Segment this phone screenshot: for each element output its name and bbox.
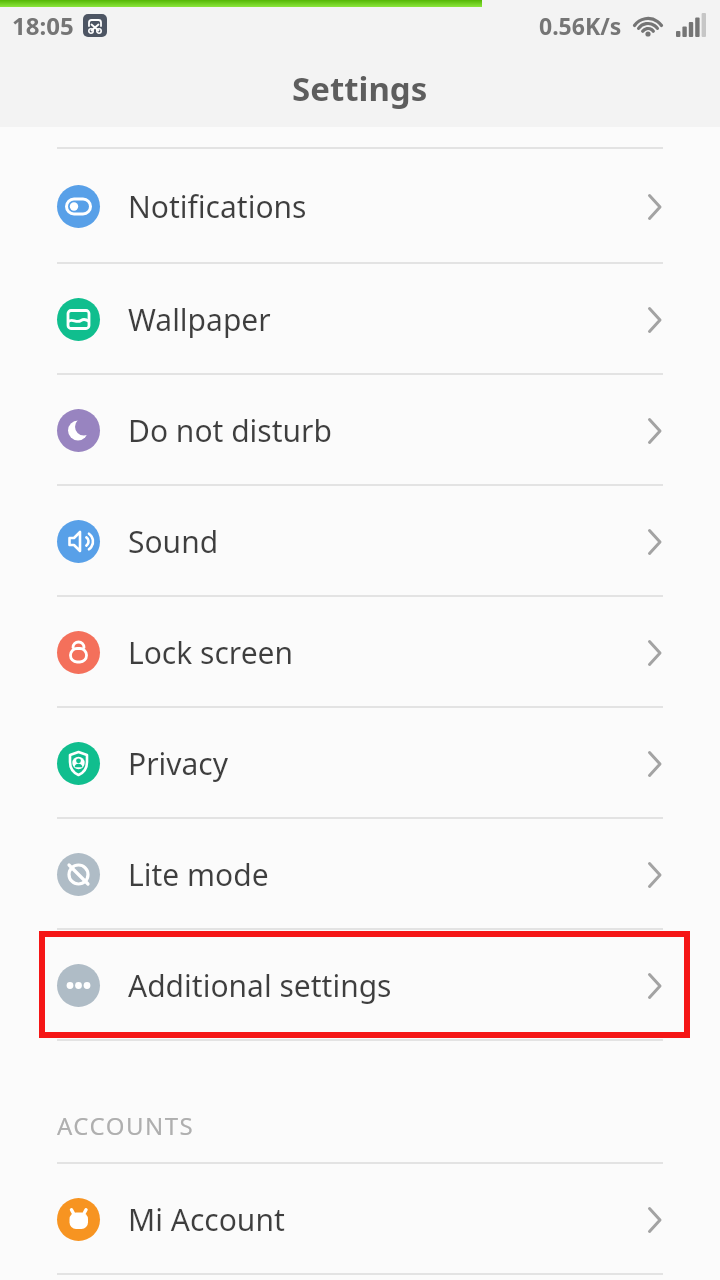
button[interactable]: Notifications xyxy=(0,149,720,264)
staticText: Settings xyxy=(292,66,428,111)
staticText: Lite mode xyxy=(128,854,269,895)
button[interactable]: Additional settings xyxy=(0,930,720,1041)
button[interactable]: Mi Account xyxy=(0,1164,720,1275)
staticText: Privacy xyxy=(128,743,229,784)
staticText: 0.56K/s xyxy=(539,10,622,41)
staticText: Mi Account xyxy=(128,1199,285,1240)
button[interactable]: Lock screen xyxy=(0,597,720,708)
staticText: Notifications xyxy=(128,186,307,227)
staticText: Lock screen xyxy=(128,632,294,673)
staticText: ACCOUNTS xyxy=(57,1109,195,1142)
staticText: Additional settings xyxy=(128,965,392,1006)
staticText: Sound xyxy=(128,521,219,562)
staticText: Wallpaper xyxy=(128,299,271,340)
staticText: 18:05 xyxy=(12,9,74,42)
button[interactable]: Privacy xyxy=(0,708,720,819)
staticText: Do not disturb xyxy=(128,410,332,451)
button[interactable]: Wallpaper xyxy=(0,264,720,375)
button[interactable]: Lite mode xyxy=(0,819,720,930)
button[interactable]: Do not disturb xyxy=(0,375,720,486)
button[interactable]: Sound xyxy=(0,486,720,597)
